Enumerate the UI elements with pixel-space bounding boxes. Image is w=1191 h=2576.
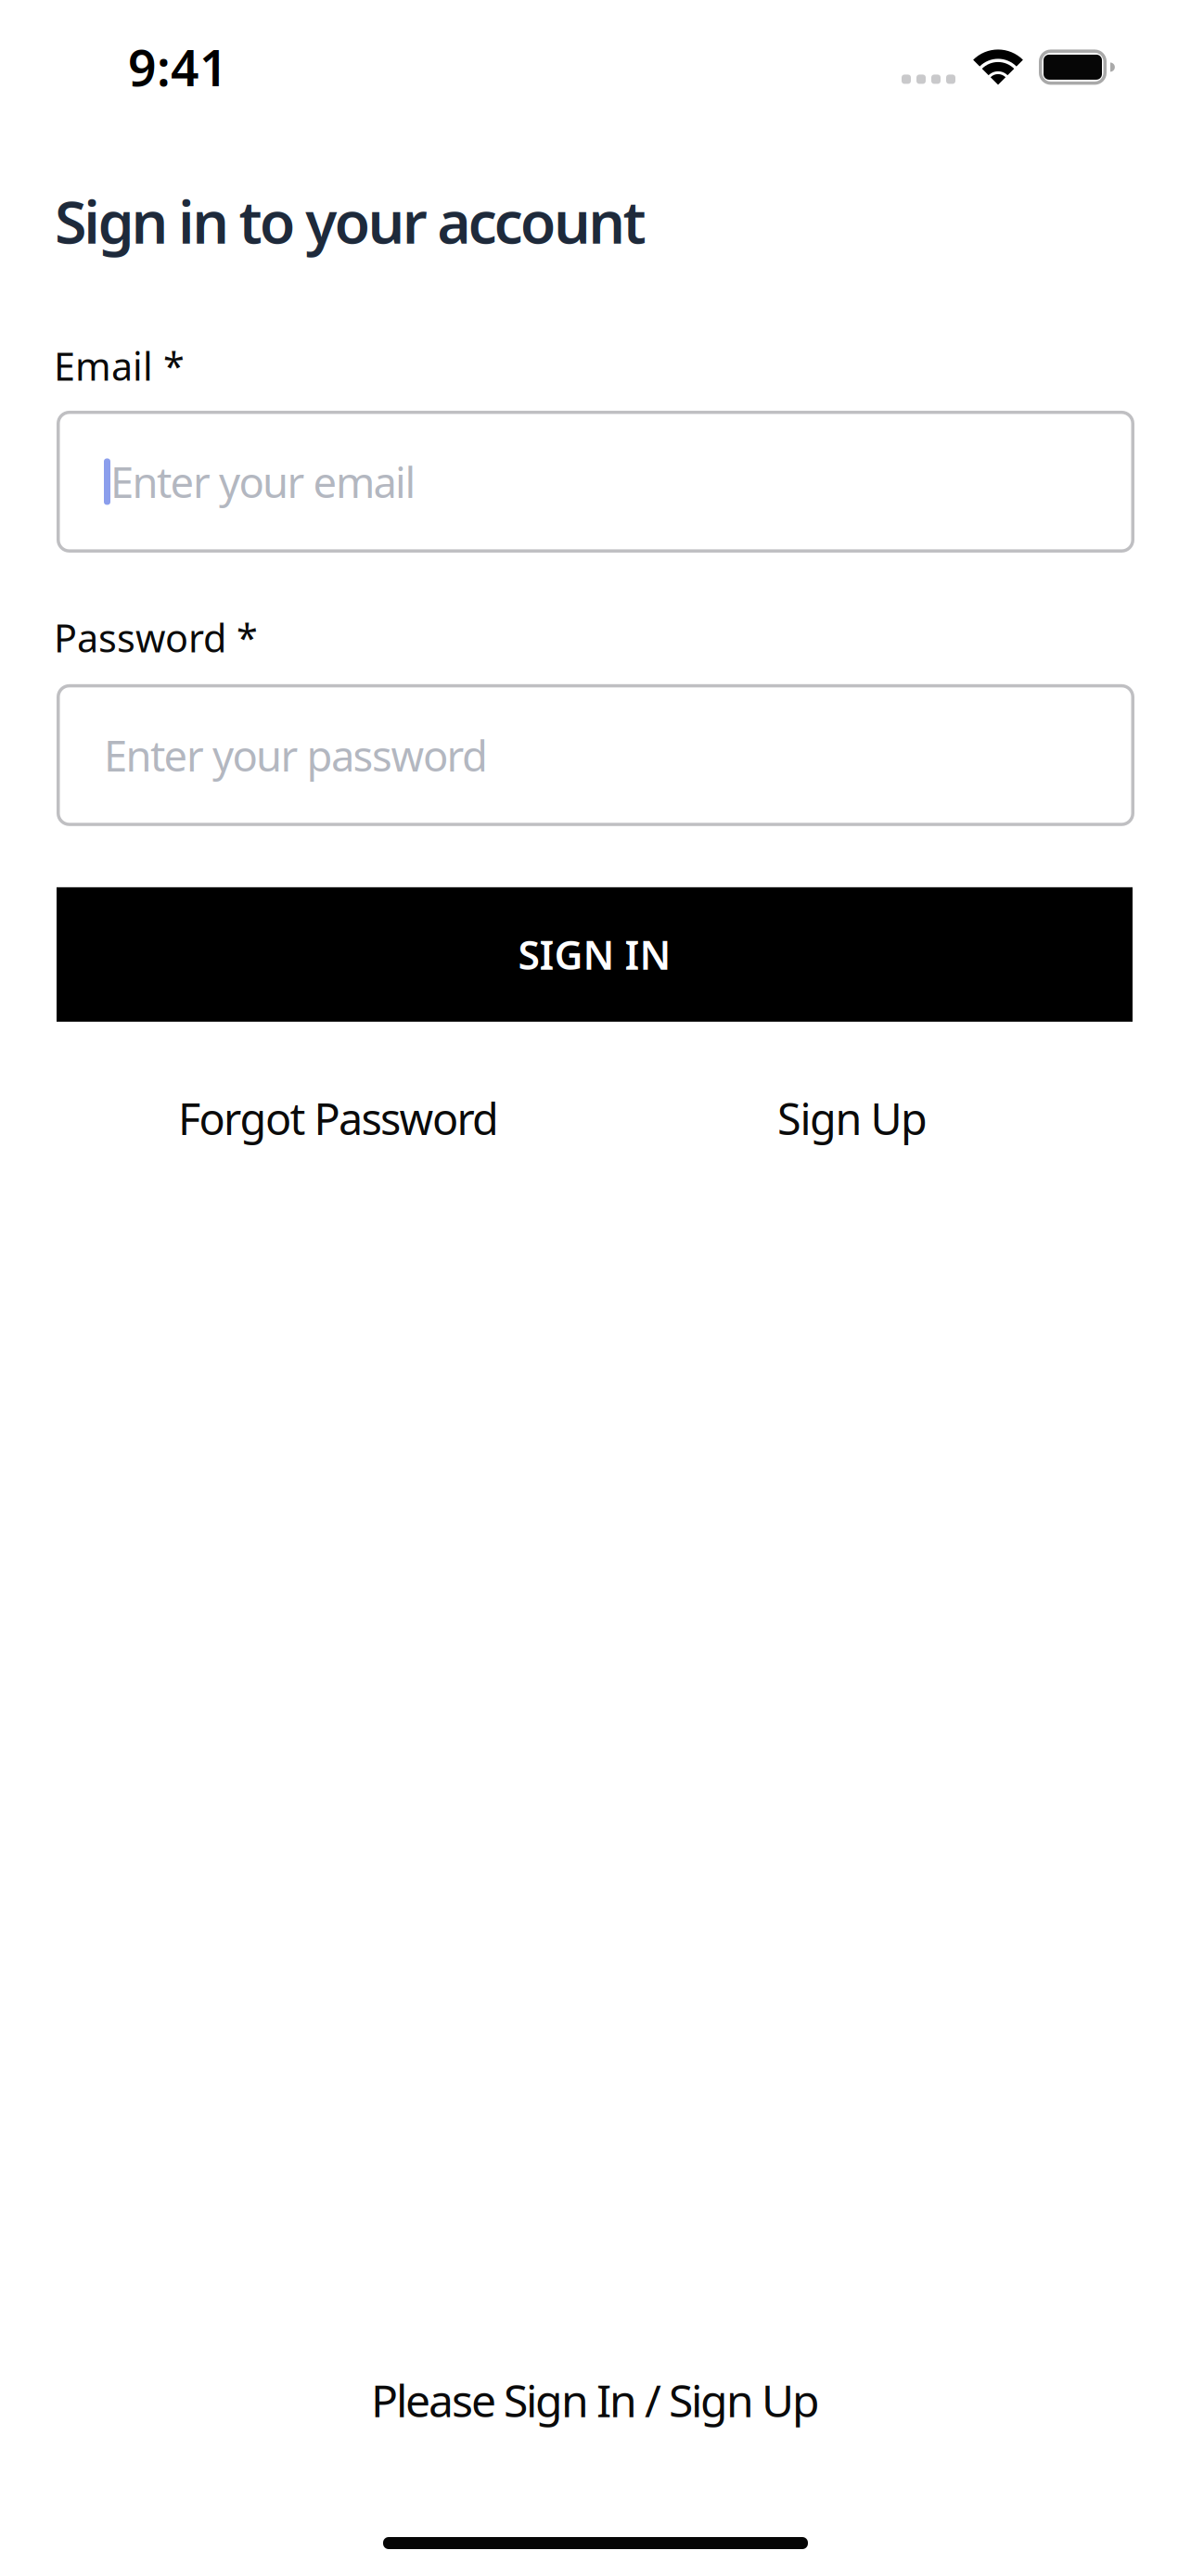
button[interactable]: SIGN IN <box>57 887 1133 1022</box>
staticText: Enter your password <box>104 727 488 783</box>
staticText: Please Sign In / Sign Up <box>371 2370 820 2429</box>
staticText: SIGN IN <box>518 928 671 981</box>
staticText: Email * <box>54 340 185 391</box>
staticText: Password * <box>54 612 258 663</box>
staticText: Sign in to your account <box>55 182 646 260</box>
button[interactable]: Enter your password <box>57 684 1134 826</box>
button[interactable]: Sign Up <box>595 1089 1109 1147</box>
staticText: 9:41 <box>128 34 228 100</box>
staticText: Forgot Password <box>178 1089 499 1147</box>
button[interactable]: Forgot Password <box>82 1089 595 1147</box>
button[interactable]: Enter your email <box>57 411 1134 553</box>
staticText: Sign Up <box>777 1089 928 1147</box>
staticText: Enter your email <box>110 454 416 510</box>
